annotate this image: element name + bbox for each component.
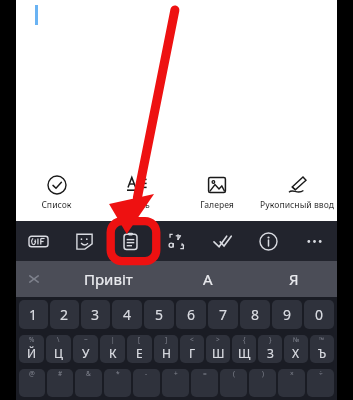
button[interactable]: *	[104, 369, 131, 397]
button[interactable]: 8	[240, 300, 270, 329]
staticText: Ц	[54, 345, 63, 361]
staticText: Я	[289, 269, 299, 289]
button[interactable]: Info	[245, 221, 291, 261]
staticText: |	[111, 335, 115, 344]
button[interactable]: Collapse suggestions	[16, 261, 52, 297]
staticText: 7	[219, 305, 228, 324]
staticText: А	[203, 269, 213, 289]
button[interactable]: Translate	[153, 221, 199, 261]
staticText: Привіт	[84, 269, 133, 289]
staticText: К	[109, 345, 117, 361]
button[interactable]: ×	[278, 369, 305, 397]
staticText: Й	[27, 345, 37, 361]
button[interactable]: 3	[81, 300, 110, 329]
staticText: +	[174, 369, 178, 378]
button[interactable]: Стиль	[97, 165, 177, 221]
staticText: №	[293, 335, 300, 344]
staticText: {	[243, 335, 246, 344]
staticText: >	[216, 335, 220, 344]
button[interactable]: ~	[73, 335, 98, 363]
staticText: ×	[290, 369, 294, 378]
button[interactable]: -	[133, 369, 160, 397]
staticText: Х	[292, 345, 300, 361]
staticText: ÷	[319, 369, 323, 378]
staticText: ]	[165, 335, 168, 344]
staticText: 5	[155, 305, 164, 324]
button[interactable]: &	[75, 369, 102, 397]
staticText: Н	[162, 345, 171, 361]
staticText: 2	[60, 305, 69, 324]
button[interactable]: Список	[16, 165, 97, 221]
button[interactable]: {	[232, 335, 256, 363]
staticText: 9	[283, 305, 292, 324]
staticText: @	[29, 369, 35, 378]
button[interactable]: ]	[154, 335, 178, 363]
button[interactable]: Рукописный ввод	[257, 165, 337, 221]
staticText: ~	[84, 335, 88, 344]
button[interactable]: Я	[251, 261, 337, 297]
staticText: Список	[41, 199, 72, 211]
button[interactable]: №	[284, 335, 308, 363]
staticText: \	[57, 335, 60, 344]
button[interactable]: 6	[176, 300, 206, 329]
staticText: Щ	[238, 345, 251, 361]
staticText: 0	[315, 305, 324, 324]
button[interactable]: =	[191, 369, 218, 397]
button[interactable]: [	[127, 335, 152, 363]
button[interactable]: %	[19, 335, 44, 363]
button[interactable]: )	[249, 369, 276, 397]
staticText: %	[29, 335, 35, 344]
button[interactable]: GIF	[16, 221, 61, 261]
staticText: [	[138, 335, 141, 344]
button[interactable]: Spell check	[199, 221, 245, 261]
button[interactable]: (	[220, 369, 247, 397]
staticText: -	[145, 369, 148, 378]
button[interactable]: More options	[291, 221, 337, 261]
staticText: Е	[136, 345, 143, 361]
button[interactable]: Привіт	[52, 261, 165, 297]
staticText: 3	[91, 305, 100, 324]
button[interactable]: @	[19, 369, 45, 397]
button[interactable]: +	[162, 369, 189, 397]
staticText: *	[116, 369, 120, 378]
button[interactable]: }	[258, 335, 282, 363]
button[interactable]: 5	[144, 300, 174, 329]
button[interactable]: 1	[19, 300, 48, 329]
staticText: =	[203, 369, 207, 378]
staticText: Стиль	[125, 199, 150, 211]
button[interactable]: >	[206, 335, 230, 363]
staticText: 6	[187, 305, 196, 324]
button[interactable]: Галерея	[177, 165, 257, 221]
button[interactable]: 9	[272, 300, 302, 329]
button[interactable]: <	[180, 335, 204, 363]
staticText: 4	[123, 305, 132, 324]
button[interactable]: ÷	[307, 369, 334, 397]
staticText: }	[269, 335, 272, 344]
staticText: )	[262, 369, 264, 378]
staticText: У	[82, 345, 90, 361]
staticText: (	[233, 369, 235, 378]
staticText: #	[58, 369, 63, 378]
staticText: З	[267, 345, 274, 361]
button[interactable]: 0	[304, 300, 334, 329]
button[interactable]: |	[100, 335, 125, 363]
staticText: ™	[319, 335, 325, 344]
staticText: Галерея	[200, 199, 234, 211]
staticText: Ш	[212, 345, 225, 361]
button[interactable]: \	[46, 335, 71, 363]
button[interactable]: #	[47, 369, 73, 397]
button[interactable]: А	[165, 261, 251, 297]
staticText: Г	[189, 345, 196, 361]
button[interactable]: 7	[208, 300, 238, 329]
staticText: Ъ	[318, 345, 327, 361]
staticText: 1	[29, 305, 38, 324]
button[interactable]: Stickers	[61, 221, 107, 261]
button[interactable]: Clipboard	[107, 221, 153, 261]
staticText: &	[86, 369, 91, 378]
button[interactable]: ™	[310, 335, 334, 363]
staticText: Рукописный ввод	[260, 199, 334, 211]
staticText: 8	[251, 305, 260, 324]
staticText: <	[190, 335, 194, 344]
button[interactable]: 2	[50, 300, 79, 329]
button[interactable]: 4	[112, 300, 142, 329]
